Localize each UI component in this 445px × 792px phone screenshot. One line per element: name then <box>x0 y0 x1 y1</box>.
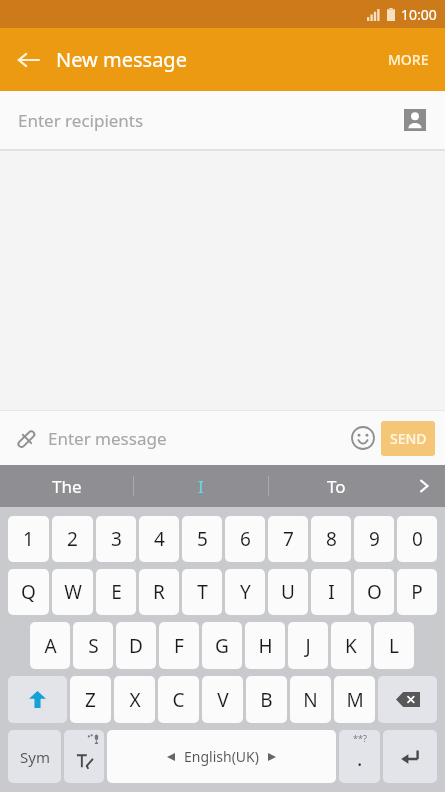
button[interactable]: L <box>374 622 414 669</box>
staticText: N <box>303 687 318 713</box>
button[interactable]: D <box>116 622 156 669</box>
button[interactable]: P <box>397 569 437 615</box>
staticText: **? <box>353 732 367 744</box>
staticText: 10:00 <box>401 5 437 24</box>
staticText: 6 <box>240 526 251 552</box>
button[interactable]: To <box>269 465 403 507</box>
button[interactable]: H <box>245 622 285 669</box>
button[interactable]: 0 <box>397 516 437 562</box>
button[interactable]: Period <box>339 730 380 783</box>
staticText: B <box>260 687 273 713</box>
button[interactable]: 6 <box>225 516 265 562</box>
button[interactable]: Y <box>225 569 265 615</box>
staticText: V <box>217 687 229 713</box>
staticText: J <box>305 633 311 659</box>
button[interactable]: S <box>73 622 113 669</box>
button[interactable]: Backspace <box>378 676 437 723</box>
staticText: Y <box>240 579 251 605</box>
button[interactable]: More suggestions <box>403 465 445 507</box>
staticText: 1 <box>23 526 34 552</box>
button[interactable]: N <box>290 676 331 723</box>
button[interactable]: I <box>311 569 351 615</box>
button[interactable]: C <box>158 676 199 723</box>
staticText: I <box>198 475 204 498</box>
button[interactable]: G <box>202 622 242 669</box>
staticText: To <box>327 475 346 498</box>
staticText: Sym <box>20 747 50 767</box>
staticText: O <box>367 579 382 605</box>
staticText: X <box>129 687 141 713</box>
button[interactable]: Handwriting <box>64 730 104 783</box>
button[interactable]: X <box>114 676 155 723</box>
staticText: 0 <box>412 526 423 552</box>
staticText: C <box>172 687 185 713</box>
staticText: Z <box>85 687 96 713</box>
button[interactable]: 4 <box>139 516 179 562</box>
staticText: F <box>174 633 184 659</box>
staticText: Q <box>21 579 36 605</box>
staticText: H <box>258 633 273 659</box>
staticText: E <box>111 579 122 605</box>
button[interactable]: U <box>268 569 308 615</box>
button[interactable]: T <box>182 569 222 615</box>
button[interactable]: Attach <box>6 420 42 456</box>
staticText: R <box>153 579 165 605</box>
staticText: 9 <box>369 526 380 552</box>
button[interactable]: W <box>52 569 93 615</box>
staticText: 5 <box>197 526 208 552</box>
button[interactable]: E <box>96 569 136 615</box>
button[interactable]: Enter recipients <box>0 91 445 149</box>
button[interactable]: 2 <box>52 516 93 562</box>
button[interactable]: R <box>139 569 179 615</box>
button[interactable]: I <box>134 465 268 507</box>
staticText: 3 <box>111 526 122 552</box>
button[interactable]: 9 <box>354 516 394 562</box>
button[interactable]: V <box>202 676 243 723</box>
staticText: SEND <box>390 429 427 448</box>
staticText: L <box>389 633 399 659</box>
staticText: S <box>88 633 99 659</box>
staticText: D <box>129 633 143 659</box>
button[interactable]: 7 <box>268 516 308 562</box>
button[interactable]: English(UK) <box>107 730 336 783</box>
button[interactable]: B <box>246 676 287 723</box>
button[interactable]: A <box>30 622 70 669</box>
staticText: 2 <box>67 526 78 552</box>
staticText: 7 <box>283 526 294 552</box>
staticText: A <box>44 633 57 659</box>
button[interactable]: F <box>159 622 199 669</box>
staticText: The <box>52 475 82 498</box>
staticText: I <box>328 579 335 605</box>
staticText: . <box>357 745 363 772</box>
button[interactable]: Z <box>70 676 111 723</box>
button[interactable]: Enter <box>383 730 437 783</box>
staticText: 4 <box>154 526 165 552</box>
staticText: Enter recipients <box>18 109 144 132</box>
staticText: W <box>64 579 82 605</box>
button[interactable]: 1 <box>8 516 49 562</box>
staticText: MORE <box>388 50 429 69</box>
button[interactable]: Q <box>8 569 49 615</box>
button[interactable]: Sym <box>8 730 61 783</box>
staticText: 8 <box>326 526 337 552</box>
staticText: New message <box>56 46 187 73</box>
button[interactable]: The <box>0 465 133 507</box>
button[interactable]: Add contact <box>397 102 433 138</box>
staticText: M <box>346 687 364 713</box>
button[interactable]: MORE <box>372 32 445 87</box>
button[interactable]: SEND <box>381 421 435 456</box>
button[interactable]: J <box>288 622 328 669</box>
button[interactable]: Back <box>0 32 56 88</box>
button[interactable]: 3 <box>96 516 136 562</box>
button[interactable]: M <box>334 676 375 723</box>
button[interactable]: 5 <box>182 516 222 562</box>
button[interactable]: 8 <box>311 516 351 562</box>
button[interactable]: Shift <box>8 676 67 723</box>
button[interactable]: Emoji <box>345 420 381 456</box>
staticText: K <box>345 633 357 659</box>
staticText: Enter message <box>48 427 167 450</box>
button[interactable]: K <box>331 622 371 669</box>
button[interactable]: O <box>354 569 394 615</box>
staticText: English(UK) <box>184 747 259 766</box>
staticText: G <box>215 633 229 659</box>
